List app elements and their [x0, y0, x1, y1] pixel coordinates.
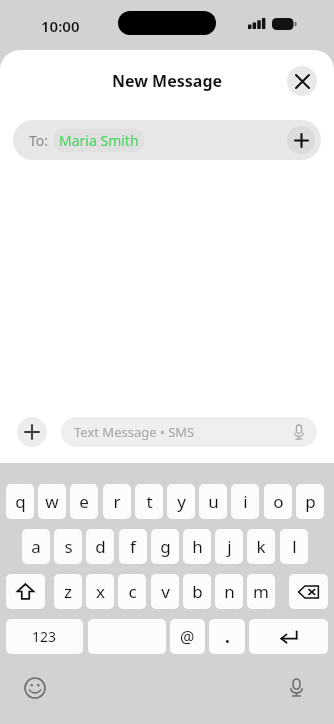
- button[interactable]: To:: [13, 120, 321, 160]
- button[interactable]: b: [183, 574, 211, 609]
- button[interactable]: k: [247, 529, 275, 564]
- button[interactable]: g: [151, 529, 179, 564]
- staticText: f: [130, 535, 136, 558]
- staticText: To:: [29, 131, 49, 150]
- staticText: m: [253, 580, 269, 603]
- staticText: t: [146, 490, 153, 513]
- button[interactable]: a: [22, 529, 50, 564]
- button[interactable]: f: [119, 529, 147, 564]
- staticText: .: [225, 625, 230, 648]
- staticText: g: [160, 535, 171, 558]
- button[interactable]: d: [86, 529, 114, 564]
- button[interactable]: Emoji: [22, 675, 48, 701]
- staticText: @: [180, 626, 195, 648]
- staticText: s: [64, 535, 73, 558]
- staticText: a: [31, 535, 41, 558]
- staticText: 123: [32, 627, 57, 646]
- button[interactable]: c: [118, 574, 146, 609]
- button[interactable]: Dictation: [282, 673, 310, 701]
- button[interactable]: Dictate: [290, 423, 308, 441]
- button[interactable]: Shift: [6, 574, 45, 609]
- staticText: h: [192, 535, 203, 558]
- button[interactable]: Return: [249, 619, 328, 654]
- button[interactable]: v: [151, 574, 179, 609]
- button[interactable]: Delete: [289, 574, 328, 609]
- button[interactable]: Add contact: [287, 126, 315, 154]
- button[interactable]: h: [183, 529, 211, 564]
- staticText: b: [192, 580, 203, 603]
- staticText: y: [177, 490, 186, 513]
- staticText: o: [273, 490, 284, 513]
- button[interactable]: Numbers: [6, 619, 83, 654]
- button[interactable]: n: [215, 574, 243, 609]
- button[interactable]: At sign: [170, 619, 205, 654]
- button[interactable]: i: [231, 484, 259, 519]
- button[interactable]: Period: [209, 619, 245, 654]
- button[interactable]: j: [215, 529, 243, 564]
- button[interactable]: m: [247, 574, 275, 609]
- button[interactable]: z: [54, 574, 82, 609]
- staticText: z: [64, 580, 72, 603]
- button[interactable]: Text Message • SMS: [61, 417, 317, 447]
- button[interactable]: Close: [287, 66, 317, 96]
- button[interactable]: t: [135, 484, 163, 519]
- button[interactable]: r: [103, 484, 131, 519]
- button[interactable]: s: [54, 529, 82, 564]
- button[interactable]: p: [296, 484, 324, 519]
- staticText: c: [128, 580, 137, 603]
- button[interactable]: Space: [88, 619, 166, 654]
- button[interactable]: y: [167, 484, 195, 519]
- staticText: Maria Smith: [59, 131, 139, 150]
- button[interactable]: x: [86, 574, 114, 609]
- button[interactable]: u: [199, 484, 227, 519]
- staticText: p: [305, 490, 316, 513]
- staticText: x: [96, 580, 105, 603]
- staticText: 10:00: [41, 16, 80, 36]
- button[interactable]: e: [70, 484, 98, 519]
- staticText: e: [79, 490, 89, 513]
- button[interactable]: Add attachment: [17, 417, 47, 447]
- staticText: New Message: [112, 70, 223, 92]
- staticText: j: [227, 535, 232, 558]
- button[interactable]: o: [264, 484, 292, 519]
- staticText: d: [95, 535, 106, 558]
- staticText: l: [292, 535, 297, 558]
- button[interactable]: q: [6, 484, 34, 519]
- staticText: w: [45, 490, 59, 513]
- staticText: k: [256, 535, 266, 558]
- staticText: u: [208, 490, 219, 513]
- staticText: n: [224, 580, 235, 603]
- staticText: i: [243, 490, 248, 513]
- staticText: q: [15, 490, 26, 513]
- button[interactable]: l: [280, 529, 308, 564]
- staticText: r: [113, 490, 121, 513]
- staticText: Text Message • SMS: [74, 423, 195, 441]
- button[interactable]: w: [38, 484, 66, 519]
- staticText: v: [161, 580, 170, 603]
